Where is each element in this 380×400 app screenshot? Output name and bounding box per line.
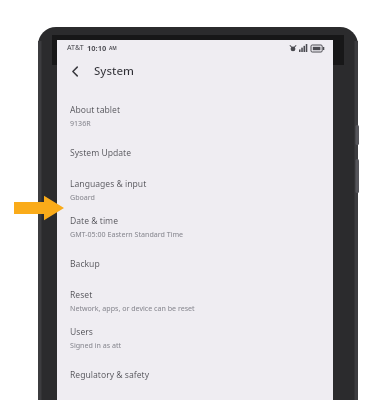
staticText: GMT-05:00 Eastern Standard Time bbox=[70, 229, 184, 239]
staticText: System Update bbox=[70, 147, 132, 159]
button[interactable]: System Update bbox=[57, 134, 333, 171]
button[interactable]: Regulatory & safety bbox=[57, 356, 333, 393]
staticText: AM bbox=[109, 45, 117, 52]
button[interactable]: Backup bbox=[57, 245, 333, 282]
staticText: About tablet bbox=[70, 104, 120, 116]
button[interactable]: Languages & input bbox=[57, 171, 333, 208]
staticText: Languages & input bbox=[70, 178, 147, 190]
staticText: Network, apps, or device can be reset bbox=[70, 303, 195, 313]
staticText: Backup bbox=[70, 258, 100, 270]
staticText: AT&T bbox=[67, 43, 84, 53]
button[interactable]: Reset bbox=[57, 282, 333, 319]
staticText: Signed in as att bbox=[70, 340, 122, 350]
staticText: Reset bbox=[70, 289, 93, 301]
staticText: Regulatory & safety bbox=[70, 369, 150, 381]
staticText: Gboard bbox=[70, 192, 95, 202]
staticText: 10:10 bbox=[87, 43, 107, 53]
button[interactable]: Date & time bbox=[57, 208, 333, 245]
button[interactable]: Users bbox=[57, 319, 333, 356]
staticText: Date & time bbox=[70, 215, 119, 227]
staticText: Users bbox=[70, 326, 93, 338]
staticText: System bbox=[94, 63, 134, 79]
button[interactable]: About tablet bbox=[57, 97, 333, 134]
button[interactable]: Back bbox=[62, 58, 88, 84]
staticText: 9136R bbox=[70, 118, 91, 128]
